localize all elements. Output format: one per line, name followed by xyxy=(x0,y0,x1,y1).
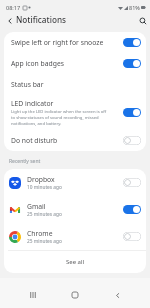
button[interactable]: Gmail xyxy=(4,196,146,223)
staticText: Dropbox xyxy=(27,175,55,184)
staticText: See all xyxy=(66,258,85,266)
staticText: 81% xyxy=(129,4,140,11)
button[interactable]: Swipe left or right for snooze xyxy=(4,32,146,53)
button[interactable] xyxy=(123,59,141,68)
staticText: Status bar xyxy=(11,80,44,89)
button[interactable]: Dropbox xyxy=(4,169,146,196)
staticText: Chrome xyxy=(27,229,53,238)
button[interactable]: Status bar xyxy=(4,74,146,95)
button[interactable]: Back xyxy=(3,14,16,27)
button[interactable]: Chrome xyxy=(4,223,146,250)
staticText: Light up the LED indicator when the scre… xyxy=(11,109,111,127)
button[interactable]: Recents xyxy=(24,286,42,304)
button[interactable]: Home xyxy=(66,286,84,304)
staticText: Recently sent xyxy=(9,158,41,165)
button[interactable] xyxy=(123,136,141,145)
staticText: 10 minutes ago xyxy=(27,184,62,191)
staticText: 08:17 xyxy=(6,4,21,11)
button[interactable] xyxy=(123,232,141,241)
button[interactable]: See all xyxy=(4,251,146,273)
button[interactable] xyxy=(123,108,141,117)
staticText: Gmail xyxy=(27,202,46,211)
button[interactable] xyxy=(123,178,141,187)
staticText: Do not disturb xyxy=(11,136,123,145)
button[interactable]: Search xyxy=(136,14,149,27)
button[interactable]: LED indicator xyxy=(4,95,146,130)
button[interactable] xyxy=(123,205,141,214)
staticText: Notifications xyxy=(16,14,66,25)
button[interactable]: Do not disturb xyxy=(4,130,146,151)
staticText: Swipe left or right for snooze xyxy=(11,38,123,47)
staticText: App icon badges xyxy=(11,59,123,68)
button[interactable] xyxy=(123,38,141,47)
staticText: 25 minutes ago xyxy=(27,238,62,245)
staticText: 25 minutes ago xyxy=(27,211,62,218)
button[interactable]: App icon badges xyxy=(4,53,146,74)
staticText: LED indicator xyxy=(11,99,54,108)
button[interactable]: Back xyxy=(108,286,126,304)
